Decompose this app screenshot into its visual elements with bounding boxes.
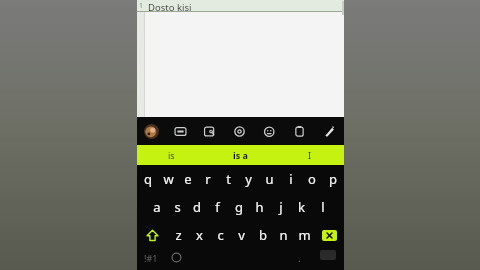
staticText: m	[298, 226, 311, 244]
staticText: j	[279, 198, 283, 216]
button[interactable]: Stickers	[137, 117, 166, 145]
button[interactable]: w	[158, 165, 178, 193]
staticText: d	[193, 198, 201, 216]
staticText: r	[205, 170, 211, 188]
button[interactable]: Period	[287, 249, 312, 270]
button[interactable]: GIF	[166, 117, 195, 145]
staticText: is	[168, 149, 175, 161]
button[interactable]: t	[218, 165, 238, 193]
staticText: z	[175, 226, 182, 244]
button[interactable]: p	[322, 165, 343, 193]
button[interactable]: Dosto kisi	[137, 0, 344, 117]
staticText: I	[308, 149, 312, 161]
staticText: Dosto kisi	[148, 1, 192, 14]
button[interactable]: is	[137, 145, 206, 165]
button[interactable]: r	[198, 165, 218, 193]
button[interactable]: d	[187, 193, 207, 221]
button[interactable]: f	[207, 193, 228, 221]
button[interactable]: h	[249, 193, 270, 221]
staticText: o	[308, 170, 316, 188]
staticText: !#1	[144, 252, 158, 264]
staticText: b	[259, 226, 267, 244]
button[interactable]: c	[210, 221, 231, 249]
staticText: f	[215, 198, 220, 216]
button[interactable]: k	[291, 193, 312, 221]
button[interactable]: Numbers	[138, 249, 164, 270]
staticText: v	[238, 226, 245, 244]
button[interactable]: y	[238, 165, 259, 193]
button[interactable]: s	[167, 193, 187, 221]
button[interactable]: i	[280, 165, 301, 193]
staticText: .	[298, 251, 301, 265]
staticText: is a	[233, 149, 248, 161]
button[interactable]: x	[189, 221, 210, 249]
staticText: w	[163, 170, 174, 188]
button[interactable]: Emoji keyboard	[164, 249, 189, 270]
button[interactable]: o	[301, 165, 322, 193]
button[interactable]: Translate	[195, 117, 224, 145]
button[interactable]: q	[138, 165, 158, 193]
staticText: y	[245, 170, 252, 188]
button[interactable]: Emoji	[254, 117, 284, 145]
button[interactable]: g	[228, 193, 249, 221]
button[interactable]: b	[252, 221, 273, 249]
staticText: p	[329, 170, 337, 188]
staticText: i	[289, 170, 293, 188]
staticText: k	[298, 198, 305, 216]
staticText: l	[321, 198, 325, 216]
staticText: n	[279, 226, 288, 244]
button[interactable]: Clipboard	[284, 117, 314, 145]
staticText: 1	[139, 1, 144, 11]
button[interactable]: a	[147, 193, 167, 221]
button[interactable]: v	[231, 221, 252, 249]
staticText: h	[255, 198, 264, 216]
button[interactable]: j	[270, 193, 291, 221]
staticText: x	[196, 226, 203, 244]
staticText: u	[265, 170, 274, 188]
button[interactable]: is a	[206, 145, 275, 165]
button[interactable]: n	[273, 221, 294, 249]
button[interactable]: m	[294, 221, 315, 249]
staticText: a	[153, 198, 161, 216]
button[interactable]: Theme	[314, 117, 344, 145]
button[interactable]: u	[259, 165, 280, 193]
staticText: t	[226, 170, 231, 188]
staticText: q	[144, 170, 152, 188]
staticText: s	[174, 198, 181, 216]
button[interactable]: Settings	[224, 117, 254, 145]
button[interactable]: e	[178, 165, 198, 193]
button[interactable]: z	[167, 221, 189, 249]
button[interactable]: I	[275, 145, 344, 165]
button[interactable]: Enter	[312, 249, 343, 270]
staticText: e	[184, 170, 192, 188]
button[interactable]: l	[312, 193, 333, 221]
staticText: g	[235, 198, 243, 216]
staticText: c	[217, 226, 224, 244]
button[interactable]: Backspace	[315, 221, 343, 249]
button[interactable]: Shift	[138, 221, 167, 249]
